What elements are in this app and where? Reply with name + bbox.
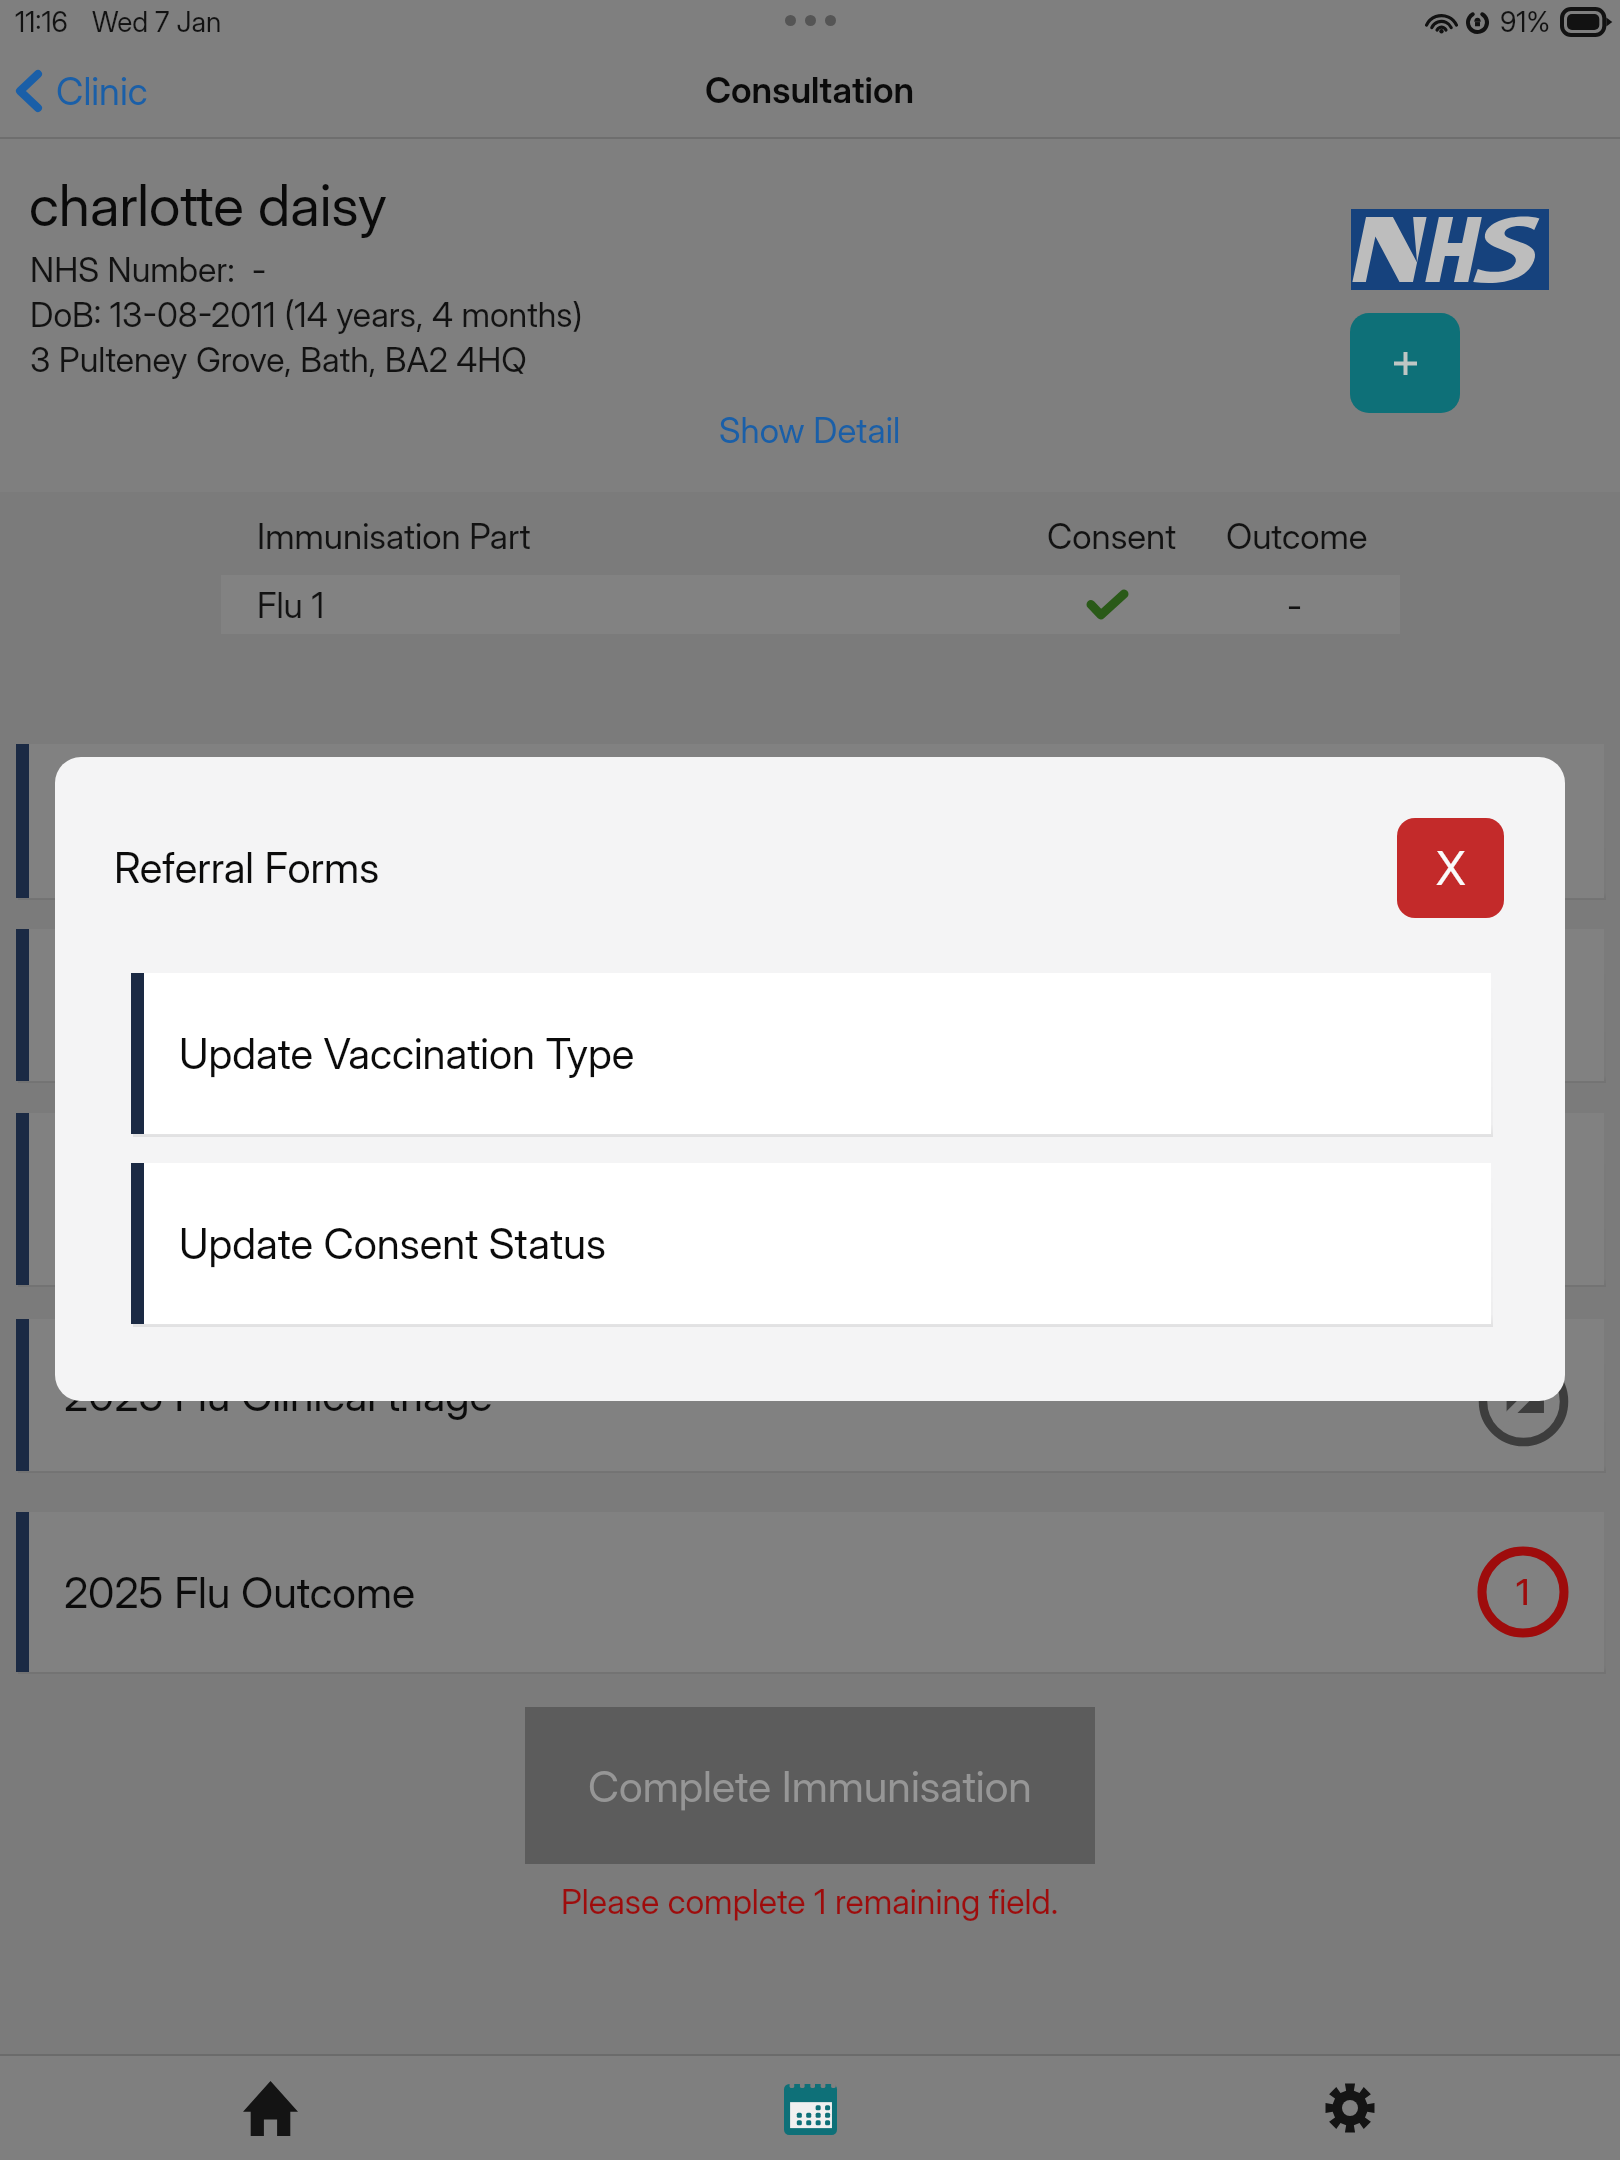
- staticText: -: [1287, 584, 1303, 626]
- staticText: Complete Immunisation: [588, 1760, 1032, 1812]
- other: NHS: [1351, 209, 1549, 290]
- button[interactable]: Clinic: [16, 68, 148, 114]
- staticText: charlotte daisy: [29, 171, 387, 240]
- button[interactable]: Flu 1: [221, 575, 1400, 634]
- staticText: Consent: [1047, 515, 1177, 557]
- button[interactable]: Close: [1397, 818, 1504, 918]
- button[interactable]: Complete Immunisation: [525, 1707, 1095, 1864]
- staticText: NHS Number: -: [30, 249, 267, 290]
- button[interactable]: 2025 Flu Gillick: [16, 929, 1604, 1081]
- staticText: Immunisation Part: [257, 515, 531, 557]
- button[interactable]: Home: [0, 2056, 540, 2160]
- staticText: Clinic: [56, 68, 148, 114]
- staticText: 2025 Flu Clinical triage: [64, 1369, 493, 1421]
- staticText: Wed 7 Jan: [92, 5, 222, 39]
- button[interactable]: Add: [1350, 313, 1460, 413]
- staticText: 2025 Flu Outcome: [64, 1566, 416, 1618]
- staticText: DoB: 13-08-2011 (14 years, 4 months): [30, 294, 583, 335]
- button[interactable]: Update Vaccination Type: [131, 973, 1491, 1134]
- button[interactable]: Update Consent Status: [131, 1163, 1491, 1324]
- staticText: Consultation: [705, 68, 915, 112]
- staticText: 91%: [1500, 5, 1551, 39]
- button[interactable]: 2025 Flu Health Questions: [16, 1113, 1604, 1285]
- staticText: 2025 Flu Gillick: [64, 979, 353, 1031]
- staticText: 1: [1516, 1570, 1530, 1614]
- staticText: 11:16: [15, 5, 68, 39]
- staticText: Outcome: [1226, 515, 1368, 557]
- staticText: Update Vaccination Type: [179, 1028, 635, 1079]
- button[interactable]: Settings: [1080, 2056, 1620, 2160]
- staticText: Please complete 1 remaining field.: [561, 1881, 1059, 1922]
- button[interactable]: 2025 Flu Consent: [16, 744, 1604, 898]
- button[interactable]: Calendar: [540, 2056, 1080, 2160]
- staticText: X: [1436, 840, 1466, 896]
- staticText: 2025 Flu Health Questions: [64, 1173, 564, 1225]
- staticText: Referral Forms: [114, 842, 380, 893]
- staticText: Update Consent Status: [179, 1218, 606, 1269]
- button[interactable]: 2025 Flu Clinical triage: [16, 1319, 1604, 1471]
- button[interactable]: 2025 Flu Outcome: [16, 1512, 1604, 1672]
- staticText: Flu 1: [257, 584, 325, 626]
- staticText: 3 Pulteney Grove, Bath, BA2 4HQ: [30, 339, 527, 380]
- button[interactable]: Show Detail: [719, 409, 901, 451]
